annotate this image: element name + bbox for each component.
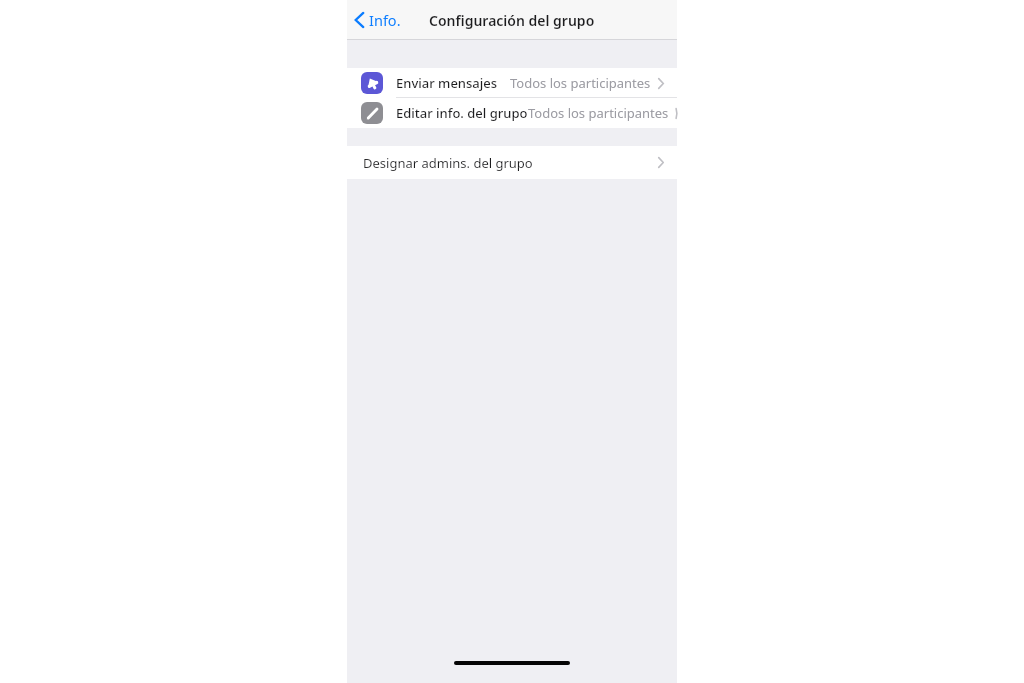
staticText: Enviar mensajes xyxy=(396,74,498,92)
button[interactable]: Designar admins. del grupo xyxy=(347,146,677,179)
staticText: Editar info. del grupo xyxy=(396,104,528,122)
button[interactable]: Info. xyxy=(347,0,411,40)
staticText: Designar admins. del grupo xyxy=(363,154,533,172)
button[interactable]: Enviar mensajes xyxy=(347,68,677,98)
button[interactable]: Editar info. del grupo xyxy=(347,98,677,128)
staticText: Info. xyxy=(369,10,401,30)
staticText: Todos los participantes xyxy=(510,74,651,92)
staticText: Todos los participantes xyxy=(528,104,669,122)
staticText: Configuración del grupo xyxy=(429,11,595,30)
